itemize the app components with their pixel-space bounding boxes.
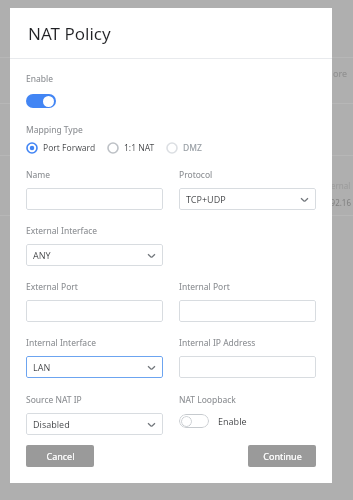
button[interactable]: Cancel xyxy=(26,445,94,467)
button[interactable]: ANY xyxy=(26,244,163,266)
button[interactable] xyxy=(26,188,163,210)
button[interactable]: TCP+UDP xyxy=(179,188,316,210)
button[interactable]: Disabled xyxy=(26,413,163,435)
staticText: Disabled xyxy=(33,418,70,430)
staticText: Mapping Type xyxy=(26,124,83,136)
staticText: Port Forward xyxy=(43,142,96,154)
staticText: 192.16 xyxy=(326,197,352,208)
staticText: NAT Policy xyxy=(28,22,111,45)
staticText: Source NAT IP xyxy=(26,394,82,406)
staticText: ernal xyxy=(331,180,351,191)
button[interactable]: Enabled toggle xyxy=(26,94,56,108)
staticText: 1:1 NAT xyxy=(124,142,155,154)
staticText: External Port xyxy=(26,281,78,293)
staticText: Enable xyxy=(26,73,53,85)
staticText: LAN xyxy=(33,361,51,373)
staticText: Cancel xyxy=(46,450,75,462)
staticText: Internal Port xyxy=(179,281,230,293)
staticText: Internal Interface xyxy=(26,337,97,349)
button[interactable]: Port Forward xyxy=(26,142,96,154)
staticText: Name xyxy=(26,169,50,181)
staticText: NAT Loopback xyxy=(179,394,236,406)
staticText: ANY xyxy=(33,249,51,261)
button[interactable]: Disabled toggle xyxy=(179,414,209,428)
staticText: Enable xyxy=(218,415,247,427)
staticText: Continue xyxy=(263,450,302,462)
staticText: External Interface xyxy=(26,225,98,237)
button[interactable]: DMZ xyxy=(166,142,202,154)
staticText: ore xyxy=(333,67,348,79)
staticText: Internal IP Address xyxy=(179,337,256,349)
staticText: TCP+UDP xyxy=(186,193,226,205)
button[interactable] xyxy=(179,300,316,322)
button[interactable]: Continue xyxy=(248,445,316,467)
button[interactable]: 1:1 NAT xyxy=(107,142,155,154)
button[interactable] xyxy=(179,356,316,378)
staticText: Protocol xyxy=(179,169,213,181)
button[interactable]: LAN xyxy=(26,356,163,378)
button[interactable] xyxy=(26,300,163,322)
staticText: DMZ xyxy=(183,142,202,154)
